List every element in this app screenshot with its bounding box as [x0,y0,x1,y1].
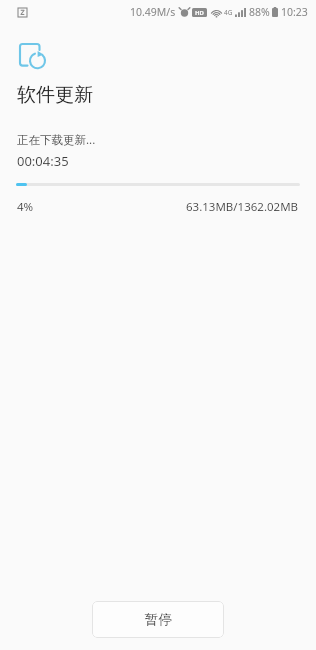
staticText: 软件更新 [17,83,93,107]
staticText: HD [195,9,204,17]
staticText: 4G [224,8,233,17]
staticText: 00:04:35 [17,152,69,170]
staticText: 正在下载更新... [17,132,96,148]
staticText: 88% [249,5,270,19]
staticText: 63.13MB/1362.02MB [186,199,299,215]
staticText: 4% [17,199,34,215]
staticText: 10.49M/s [130,5,176,19]
staticText: 暂停 [145,611,172,628]
button[interactable]: 暂停 [92,601,224,638]
staticText: 10:23 [281,5,308,19]
